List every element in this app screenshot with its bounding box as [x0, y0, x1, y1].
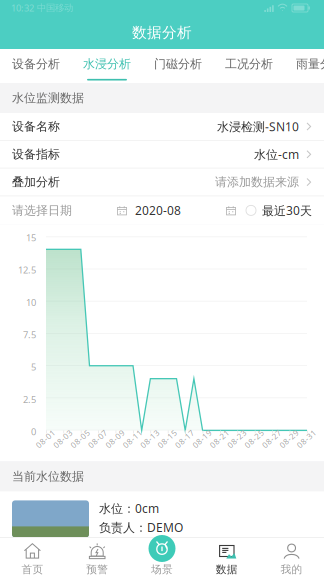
- staticText: 08-03: [51, 433, 74, 444]
- staticText: 数据: [216, 563, 238, 576]
- button[interactable]: 叠加分析: [0, 169, 324, 196]
- staticText: 08-23: [225, 433, 248, 444]
- button[interactable]: 我的: [259, 537, 324, 576]
- staticText: 08-15: [156, 433, 179, 444]
- staticText: 08-27: [260, 433, 283, 444]
- staticText: 预警: [86, 563, 108, 576]
- staticText: 负责人：DEMO: [99, 519, 183, 535]
- staticText: 水浸检测-SN10: [217, 118, 299, 134]
- staticText: 设备分析: [12, 57, 60, 71]
- button[interactable]: 设备指标: [0, 141, 324, 168]
- staticText: 请选择日期: [12, 203, 72, 218]
- staticText: 0: [31, 425, 36, 438]
- staticText: 2.5: [23, 393, 36, 405]
- staticText: 2020-08: [135, 202, 181, 218]
- button[interactable]: 2020-08: [117, 202, 181, 218]
- staticText: 15: [26, 231, 36, 244]
- staticText: 08-11: [121, 433, 144, 444]
- staticText: 设备指标: [12, 147, 60, 162]
- button[interactable]: 设备名称: [0, 113, 324, 140]
- staticText: 7.5: [23, 328, 36, 341]
- button[interactable]: 场景: [130, 537, 194, 576]
- staticText: 08-29: [278, 433, 301, 444]
- button[interactable]: 最近30天: [226, 202, 312, 218]
- button[interactable]: 预警: [65, 537, 130, 576]
- staticText: 5: [31, 361, 36, 373]
- button[interactable]: 场景: [148, 535, 175, 562]
- staticText: 08-31: [295, 433, 318, 444]
- staticText: 首页: [21, 563, 43, 576]
- staticText: 水浸分析: [83, 57, 131, 71]
- staticText: 中国移动: [37, 2, 73, 14]
- staticText: 08-01: [34, 433, 57, 444]
- staticText: 10:32: [11, 2, 34, 14]
- staticText: 更新时间：2020-08-31: [99, 538, 223, 554]
- button[interactable]: 数据: [194, 537, 259, 576]
- staticText: 场景: [151, 563, 173, 576]
- staticText: 设备名称: [12, 119, 60, 134]
- staticText: 数据分析: [132, 23, 192, 41]
- button[interactable]: 雨量分析: [284, 49, 324, 83]
- staticText: 当前水位数据: [12, 469, 84, 484]
- staticText: 08-21: [208, 433, 231, 444]
- staticText: 08-25: [243, 433, 266, 444]
- staticText: 水位：0cm: [99, 500, 159, 516]
- button[interactable]: 水浸分析: [71, 49, 142, 83]
- staticText: 08-09: [104, 433, 127, 444]
- staticText: 最近30天: [262, 202, 312, 218]
- staticText: 水位监测数据: [12, 91, 84, 105]
- staticText: 雨量分析: [296, 57, 324, 71]
- staticText: 门磁分析: [154, 57, 202, 71]
- staticText: 08-17: [173, 433, 196, 444]
- button[interactable]: 水位：0cm: [0, 491, 324, 563]
- staticText: 10: [26, 296, 36, 308]
- staticText: 08-19: [191, 433, 214, 444]
- button[interactable]: 门磁分析: [142, 49, 213, 83]
- staticText: 我的: [281, 563, 303, 576]
- staticText: 08-05: [69, 433, 92, 444]
- staticText: 请添加数据来源: [215, 175, 299, 189]
- button[interactable]: 首页: [0, 537, 65, 576]
- staticText: 水位-cm: [254, 146, 299, 162]
- button[interactable]: 设备分析: [0, 49, 71, 83]
- staticText: 工况分析: [225, 57, 273, 71]
- staticText: 08-07: [86, 433, 109, 444]
- staticText: 12.5: [18, 264, 36, 276]
- button[interactable]: 工况分析: [213, 49, 284, 83]
- staticText: 叠加分析: [12, 175, 60, 189]
- staticText: 08-13: [138, 433, 161, 444]
